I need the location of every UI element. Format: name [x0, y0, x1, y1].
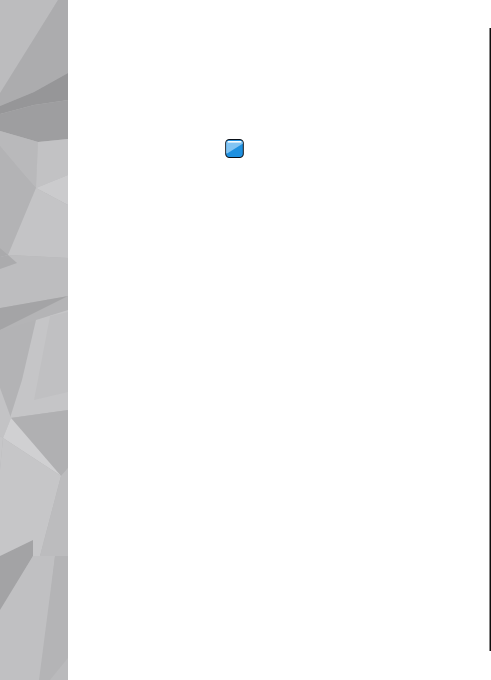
button[interactable]: Open image	[225, 139, 244, 158]
